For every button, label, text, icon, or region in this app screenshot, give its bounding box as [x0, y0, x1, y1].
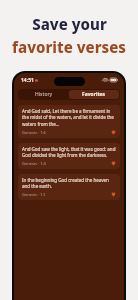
staticText: Favorites — [82, 91, 106, 98]
staticText: And God said, Let there be a firmament i… — [22, 108, 116, 127]
staticText: Save your — [32, 14, 107, 34]
staticText: Genesis · 1:4 — [22, 161, 46, 166]
button[interactable]: And God saw the light, that it was good:… — [18, 143, 120, 169]
button[interactable]: Favorite — [111, 161, 116, 166]
staticText: History — [35, 91, 53, 98]
button[interactable]: Favorite — [111, 130, 116, 135]
staticText: In the beginning God created the heaven … — [22, 177, 116, 189]
staticText: Genesis · 1:1 — [22, 192, 46, 197]
staticText: And God saw the light, that it was good:… — [22, 146, 116, 158]
button[interactable]: Favorites — [69, 90, 119, 99]
button[interactable]: Favorite — [111, 192, 116, 197]
button[interactable]: History — [19, 90, 69, 99]
staticText: 14:51 — [21, 77, 34, 84]
button[interactable]: And God said, Let there be a firmament i… — [18, 105, 120, 138]
staticText: favorite verses — [12, 37, 126, 57]
staticText: Genesis · 1:6 — [22, 130, 46, 135]
button[interactable]: In the beginning God created the heaven … — [18, 174, 120, 200]
